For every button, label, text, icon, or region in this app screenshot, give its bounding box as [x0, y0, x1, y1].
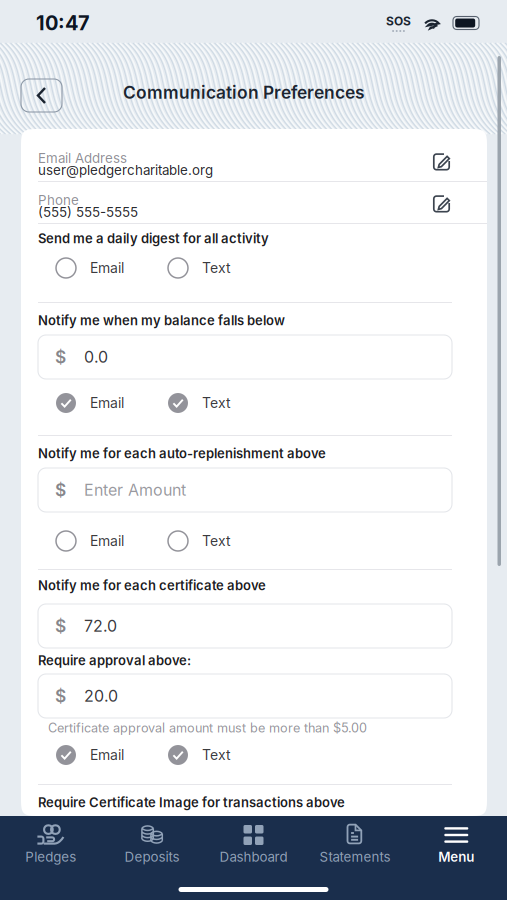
staticText: 72.0: [84, 616, 117, 636]
staticText: Enter Amount: [84, 480, 186, 500]
staticText: Email: [90, 532, 124, 549]
staticText: user@pledgercharitable.org: [38, 162, 213, 178]
button[interactable]: Email: [56, 258, 124, 278]
staticText: SOS: [386, 14, 411, 28]
button[interactable]: Deposits: [101, 816, 203, 900]
button[interactable]: Edit Phone: [431, 193, 452, 214]
staticText: Text: [202, 259, 231, 276]
button[interactable]: Edit Email Address: [431, 151, 452, 172]
staticText: Deposits: [125, 849, 180, 865]
button[interactable]: Email: [56, 531, 124, 551]
staticText: Text: [202, 532, 231, 549]
staticText: Text: [202, 394, 231, 411]
staticText: Email: [90, 746, 124, 763]
staticText: Require Certificate Image for transactio…: [38, 795, 345, 810]
staticText: $: [55, 685, 66, 706]
staticText: $: [55, 479, 66, 500]
staticText: Statements: [319, 849, 390, 865]
staticText: Notify me for each certificate above: [38, 578, 266, 593]
button[interactable]: Back: [21, 79, 62, 112]
staticText: Pledges: [25, 849, 76, 865]
staticText: Text: [202, 746, 231, 763]
button[interactable]: Text: [168, 531, 231, 551]
staticText: Email: [90, 259, 124, 276]
button[interactable]: Email: [56, 745, 124, 765]
staticText: Communication Preferences: [123, 82, 365, 103]
staticText: Notify me for each auto-replenishment ab…: [38, 446, 326, 461]
staticText: (555) 555-5555: [38, 204, 138, 220]
staticText: Require approval above:: [38, 653, 191, 668]
button[interactable]: Text: [168, 745, 231, 765]
staticText: $: [55, 615, 66, 636]
staticText: Send me a daily digest for all activity: [38, 231, 269, 246]
button[interactable]: Dashboard: [203, 816, 304, 900]
staticText: Email: [90, 394, 124, 411]
staticText: Menu: [438, 849, 474, 865]
button[interactable]: Text: [168, 258, 231, 278]
staticText: Email Address: [38, 150, 127, 166]
button[interactable]: Statements: [304, 816, 406, 900]
button[interactable]: Pledges: [0, 816, 101, 900]
staticText: Phone: [38, 192, 79, 208]
staticText: 10:47: [36, 11, 90, 35]
staticText: 20.0: [84, 686, 118, 706]
staticText: Dashboard: [219, 849, 287, 865]
staticText: Notify me when my balance falls below: [38, 313, 285, 328]
staticText: Certificate approval amount must be more…: [48, 720, 367, 736]
staticText: 0.0: [84, 347, 108, 367]
button[interactable]: Email: [56, 393, 124, 413]
staticText: $: [55, 346, 66, 367]
button[interactable]: Menu: [406, 816, 507, 900]
button[interactable]: Text: [168, 393, 231, 413]
